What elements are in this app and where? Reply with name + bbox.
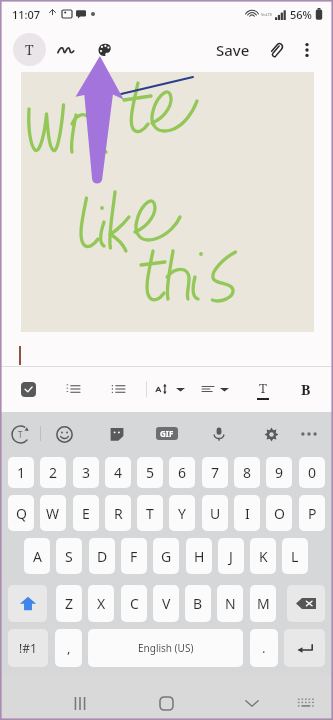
- staticText: Save: [216, 40, 250, 60]
- button[interactable]: Color palette: [90, 35, 119, 64]
- button[interactable]: Underline: [250, 376, 276, 402]
- button[interactable]: Emoji: [51, 421, 77, 447]
- button[interactable]: Voice input: [206, 421, 232, 447]
- staticText: Z: [65, 594, 74, 613]
- button[interactable]: U: [202, 495, 228, 531]
- button[interactable]: Alignment: [202, 377, 229, 401]
- staticText: U: [210, 504, 221, 523]
- button[interactable]: N: [217, 585, 243, 622]
- button[interactable]: 5: [137, 457, 163, 488]
- button[interactable]: .: [250, 629, 278, 667]
- button[interactable]: V: [153, 585, 179, 622]
- button[interactable]: Hide keyboard: [289, 687, 321, 719]
- staticText: 4: [114, 463, 123, 482]
- staticText: C: [130, 594, 139, 613]
- button[interactable]: T: [137, 495, 163, 531]
- button[interactable]: C: [121, 585, 147, 622]
- button[interactable]: Home: [150, 687, 182, 719]
- button[interactable]: Shift: [8, 585, 47, 622]
- button[interactable]: 2: [40, 457, 66, 488]
- staticText: X: [97, 594, 106, 613]
- button[interactable]: L: [282, 538, 308, 574]
- button[interactable]: 1: [8, 457, 34, 488]
- staticText: A: [33, 547, 42, 566]
- button[interactable]: 3: [73, 457, 99, 488]
- button[interactable]: G: [153, 538, 179, 574]
- staticText: 7: [211, 463, 220, 482]
- staticText: N: [225, 594, 236, 613]
- button[interactable]: Z: [56, 585, 82, 622]
- button[interactable]: Stickers: [104, 421, 130, 447]
- staticText: P: [308, 504, 317, 523]
- button[interactable]: D: [89, 538, 115, 574]
- staticText: T: [25, 40, 34, 59]
- button[interactable]: Settings: [258, 421, 284, 447]
- button[interactable]: Handwriting: [51, 35, 80, 64]
- button[interactable]: Enter: [284, 629, 325, 667]
- button[interactable]: Numbered list: [61, 377, 85, 401]
- button[interactable]: !#1: [8, 629, 48, 667]
- button[interactable]: Translate: [7, 421, 33, 447]
- button[interactable]: 6: [169, 457, 195, 488]
- staticText: K: [259, 547, 268, 566]
- button[interactable]: I: [234, 495, 260, 531]
- staticText: B: [193, 594, 203, 613]
- staticText: GIF: [160, 428, 174, 439]
- staticText: T: [146, 504, 154, 523]
- button[interactable]: More: [296, 421, 322, 447]
- button[interactable]: Checkbox list: [21, 382, 36, 397]
- staticText: V: [162, 594, 171, 613]
- staticText: 8: [243, 463, 252, 482]
- button[interactable]: H: [186, 538, 212, 574]
- button[interactable]: O: [266, 495, 292, 531]
- staticText: D: [97, 547, 108, 566]
- button[interactable]: Save: [211, 34, 255, 66]
- button[interactable]: X: [88, 585, 114, 622]
- button[interactable]: K: [250, 538, 276, 574]
- button[interactable]: 8: [234, 457, 260, 488]
- staticText: 56%: [290, 7, 312, 22]
- staticText: 5: [146, 463, 155, 482]
- button[interactable]: Attach: [261, 35, 290, 64]
- button[interactable]: R: [105, 495, 131, 531]
- button[interactable]: S: [56, 538, 82, 574]
- button[interactable]: English (US): [88, 629, 243, 667]
- button[interactable]: P: [299, 495, 325, 531]
- button[interactable]: 9: [266, 457, 292, 488]
- staticText: B: [301, 380, 311, 399]
- button[interactable]: M: [250, 585, 276, 622]
- staticText: 2: [49, 463, 58, 482]
- button[interactable]: 7: [202, 457, 228, 488]
- staticText: I: [245, 504, 250, 523]
- staticText: 1: [17, 463, 26, 482]
- button[interactable]: Text size: [155, 377, 185, 401]
- button[interactable]: Y: [169, 495, 195, 531]
- staticText: .: [262, 639, 266, 657]
- button[interactable]: Q: [8, 495, 34, 531]
- button[interactable]: B: [185, 585, 211, 622]
- staticText: L: [291, 547, 299, 566]
- button[interactable]: Text style: [13, 33, 46, 66]
- button[interactable]: W: [40, 495, 66, 531]
- button[interactable]: 0: [299, 457, 325, 488]
- staticText: !#1: [19, 640, 37, 656]
- button[interactable]: Recents: [64, 687, 96, 719]
- button[interactable]: E: [73, 495, 99, 531]
- button[interactable]: Bold: [293, 376, 319, 402]
- button[interactable]: A: [24, 538, 50, 574]
- button[interactable]: GIF: [156, 427, 178, 440]
- staticText: R: [114, 504, 123, 523]
- button[interactable]: Backspace: [287, 585, 325, 622]
- staticText: F: [130, 547, 138, 566]
- staticText: W: [46, 504, 60, 523]
- button[interactable]: Bulleted list: [106, 377, 130, 401]
- button[interactable]: More options: [292, 35, 321, 64]
- button[interactable]: Back: [236, 687, 268, 719]
- button[interactable]: 4: [105, 457, 131, 488]
- staticText: 11:07: [12, 7, 41, 22]
- staticText: J: [229, 547, 233, 566]
- button[interactable]: ,: [55, 629, 82, 667]
- staticText: O: [274, 504, 285, 523]
- button[interactable]: J: [218, 538, 244, 574]
- button[interactable]: F: [121, 538, 147, 574]
